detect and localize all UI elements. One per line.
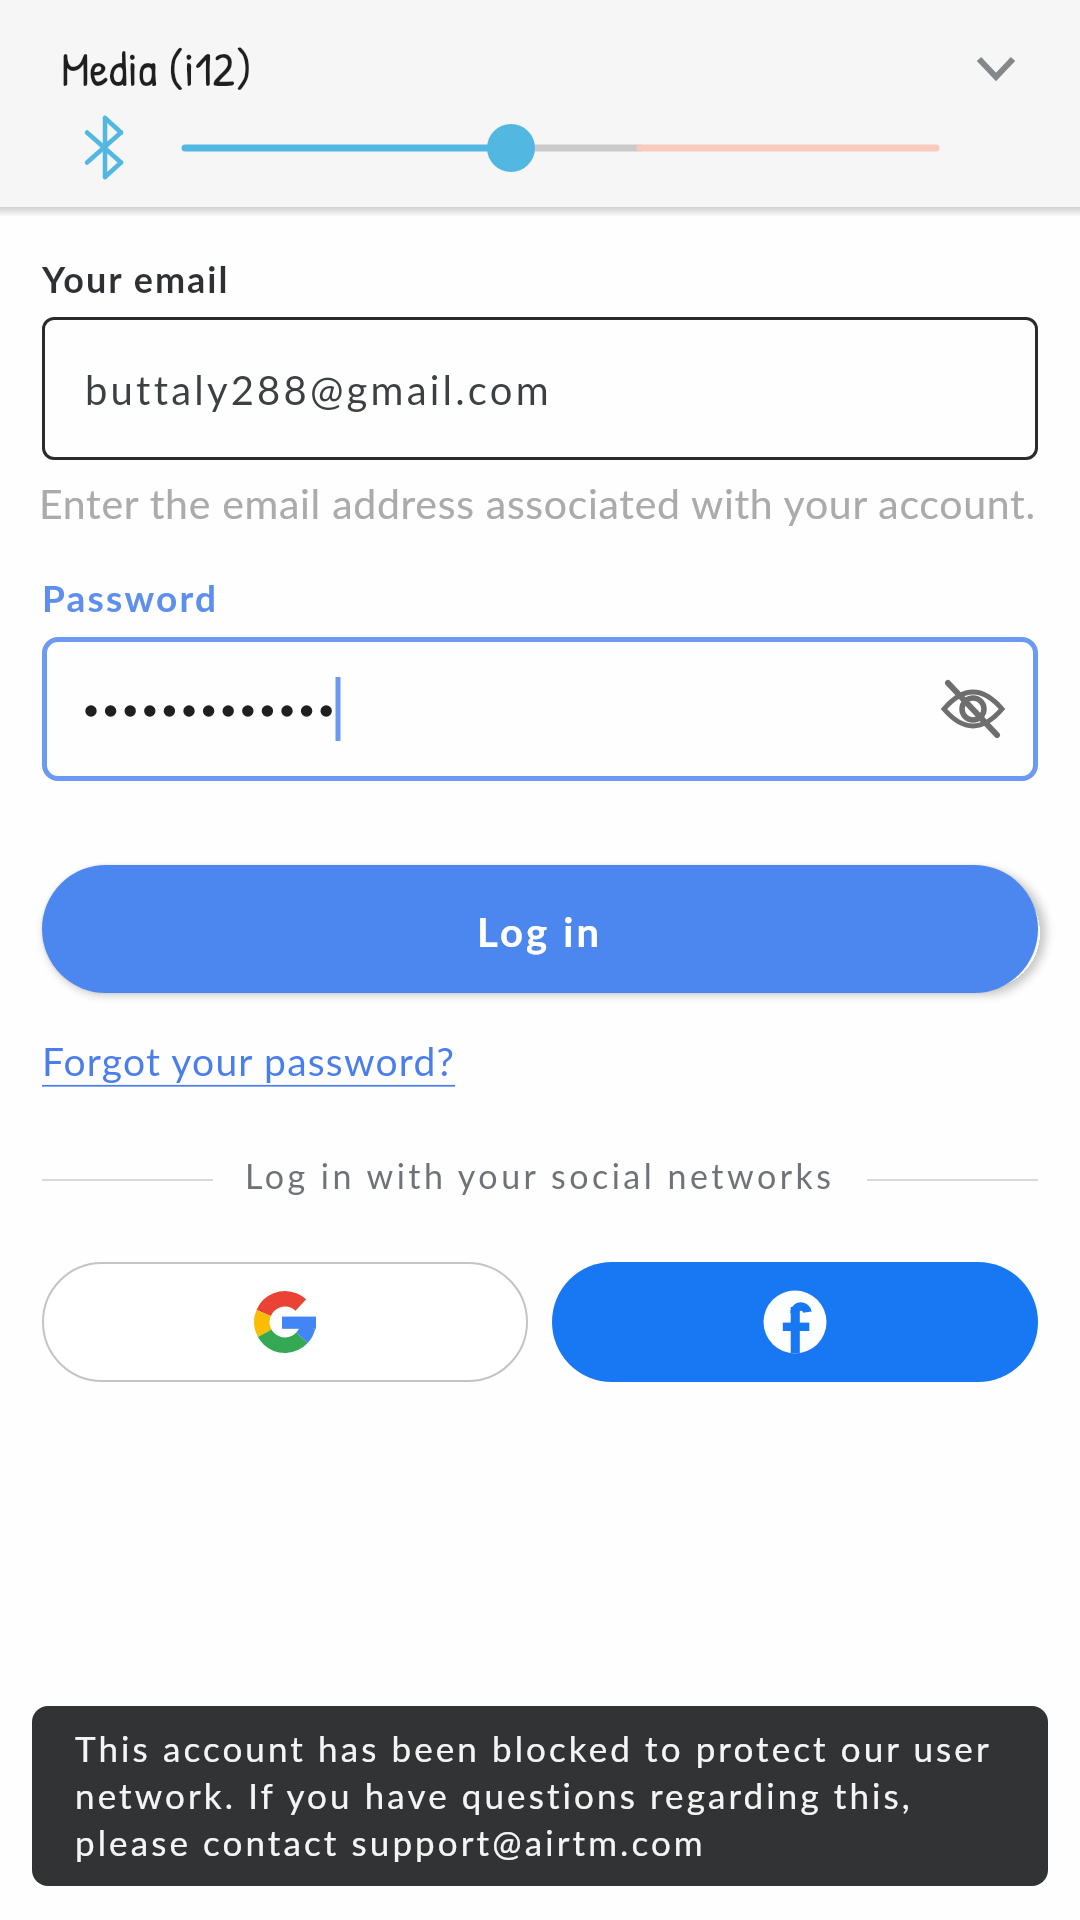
button[interactable]: [976, 56, 1016, 80]
staticText: Log in with your social networks: [245, 1155, 835, 1196]
staticText: buttaly288@gmail.com: [85, 366, 552, 414]
staticText: network. If you have questions regarding…: [75, 1774, 913, 1816]
staticText: Password: [42, 575, 219, 619]
staticText: Log in: [477, 908, 603, 956]
button[interactable]: [42, 637, 1038, 781]
button[interactable]: Forgot your password?: [42, 1038, 456, 1085]
staticText: Media (i12): [61, 36, 253, 101]
staticText: Enter the email address associated with …: [39, 479, 1036, 528]
button[interactable]: [552, 1262, 1038, 1382]
staticText: please contact support@airtm.com: [75, 1821, 706, 1863]
staticText: This account has been blocked to protect…: [75, 1727, 992, 1769]
staticText: Your email: [42, 257, 230, 300]
button[interactable]: Log in: [42, 865, 1038, 993]
button[interactable]: [42, 1262, 528, 1382]
button[interactable]: [42, 317, 1038, 460]
